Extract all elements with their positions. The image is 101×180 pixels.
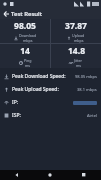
staticText: 14.8 bbox=[68, 45, 85, 57]
staticText: Peak Download Speed: bbox=[12, 73, 66, 80]
staticText: 38.1 mbps bbox=[77, 87, 97, 92]
staticText: Download bbox=[19, 33, 37, 38]
button[interactable]: Home bbox=[33, 170, 67, 180]
staticText: IP: bbox=[12, 99, 19, 106]
button[interactable]: Peak Upload Speed: bbox=[0, 83, 101, 96]
button[interactable]: 14 bbox=[0, 44, 50, 68]
staticText: ISP: bbox=[12, 112, 21, 119]
button[interactable]: Back bbox=[0, 170, 33, 180]
staticText: 98.05 bbox=[14, 20, 36, 32]
staticText: Airtel bbox=[87, 113, 97, 118]
staticText: Peak Upload Speed: bbox=[12, 86, 59, 93]
staticText: mbps bbox=[23, 38, 33, 43]
button[interactable]: Back bbox=[0, 8, 11, 19]
staticText: Upload bbox=[72, 33, 85, 38]
button[interactable]: 98.05 bbox=[0, 19, 50, 43]
button[interactable]: Peak Download Speed: bbox=[0, 70, 101, 83]
button[interactable]: 14.8 bbox=[51, 44, 101, 68]
staticText: Jitter bbox=[74, 58, 83, 63]
button[interactable]: ISP: bbox=[0, 109, 101, 122]
staticText: ms bbox=[25, 63, 31, 68]
staticText: 98.05 mbps bbox=[75, 74, 97, 79]
staticText: 14 bbox=[20, 45, 30, 57]
staticText: mbps bbox=[74, 38, 84, 43]
staticText: ms bbox=[76, 63, 82, 68]
staticText: Ping bbox=[24, 58, 32, 63]
staticText: Test Result bbox=[11, 10, 43, 18]
button[interactable]: IP: bbox=[0, 96, 101, 109]
button[interactable]: Recents bbox=[67, 170, 101, 180]
button[interactable]: 37.87 bbox=[51, 19, 101, 43]
staticText: 37.87 bbox=[65, 20, 87, 32]
